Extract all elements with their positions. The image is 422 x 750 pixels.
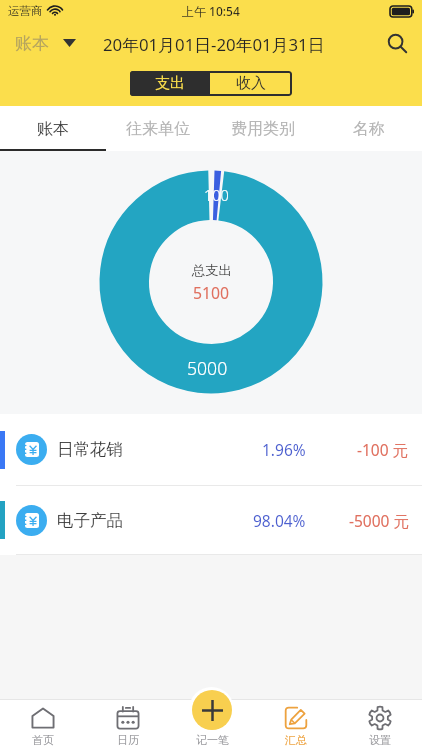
staticText: 收入 — [236, 74, 266, 93]
staticText: 日常花销 — [57, 439, 123, 460]
button[interactable]: 支出 — [130, 71, 210, 96]
staticText: 总支出 — [192, 262, 232, 279]
button[interactable]: 往来单位 — [105, 106, 210, 151]
staticText: 名称 — [353, 119, 385, 139]
staticText: -100 元 — [357, 439, 409, 460]
button[interactable]: Search — [377, 23, 417, 63]
staticText: 费用类别 — [231, 119, 295, 139]
button[interactable]: 首页 — [0, 699, 85, 750]
staticText: 电子产品 — [57, 510, 123, 531]
button[interactable]: 记一笔 — [170, 699, 254, 750]
button[interactable]: 费用类别 — [210, 106, 316, 151]
staticText: 账本 — [15, 33, 49, 54]
staticText: 设置 — [369, 733, 391, 747]
staticText: 5000 — [187, 356, 228, 380]
staticText: 运营商 — [8, 4, 43, 18]
staticText: 日历 — [117, 733, 139, 747]
staticText: 98.04% — [253, 510, 306, 531]
staticText: 账本 — [37, 119, 69, 139]
button[interactable]: 汇总 — [254, 699, 338, 750]
button[interactable]: 收入 — [210, 71, 292, 96]
staticText: -5000 元 — [349, 510, 409, 531]
staticText: 上午 10:54 — [182, 3, 240, 19]
button[interactable]: 电子产品 — [0, 486, 422, 554]
staticText: 20年01月01日-20年01月31日 — [103, 33, 325, 56]
staticText: 支出 — [155, 74, 185, 93]
staticText: 首页 — [32, 733, 54, 747]
staticText: 往来单位 — [126, 119, 190, 139]
button[interactable]: 账本 — [15, 33, 76, 54]
staticText: 汇总 — [285, 733, 307, 747]
button[interactable]: 日历 — [85, 699, 170, 750]
button[interactable]: Add entry — [192, 690, 232, 730]
button[interactable]: 日常花销 — [0, 414, 422, 485]
staticText: 1.96% — [262, 439, 306, 460]
button[interactable]: 账本 — [0, 106, 105, 151]
staticText: 记一笔 — [196, 733, 229, 747]
button[interactable]: 名称 — [316, 106, 422, 151]
staticText: 5100 — [193, 282, 230, 304]
button[interactable]: 设置 — [338, 699, 422, 750]
staticText: 100 — [204, 185, 229, 205]
